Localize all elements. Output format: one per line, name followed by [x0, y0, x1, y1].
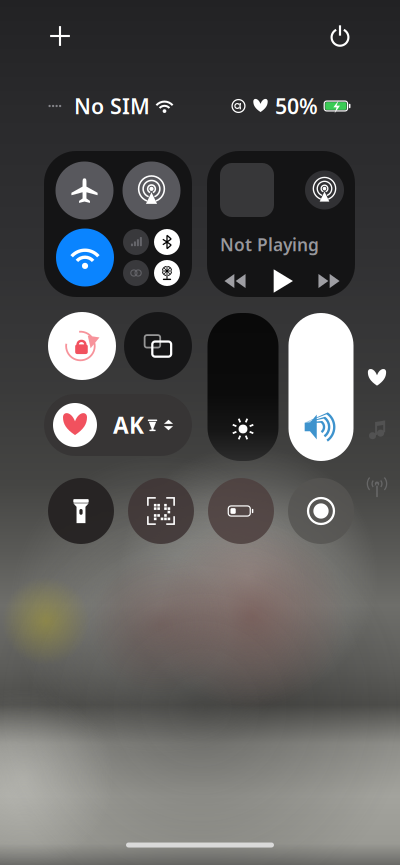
- button[interactable]: Flashlight: [48, 478, 114, 544]
- button[interactable]: Screen Recording: [288, 478, 354, 544]
- button[interactable]: Rotation Lock: [48, 312, 116, 380]
- button[interactable]: Code Scanner: [128, 478, 194, 544]
- button[interactable]: AirPlay: [305, 170, 344, 209]
- button[interactable]: Brightness: [207, 313, 278, 461]
- button[interactable]: Low Power Mode: [208, 478, 274, 544]
- button[interactable]: Focus: [44, 394, 192, 456]
- button[interactable]: Power Off: [317, 13, 363, 59]
- button[interactable]: Satellite: [154, 260, 180, 286]
- button[interactable]: Screen Mirroring: [124, 312, 192, 380]
- staticText: AK: [113, 410, 144, 440]
- button[interactable]: Wi-Fi: [56, 228, 114, 286]
- button[interactable]: Play: [267, 266, 297, 296]
- button[interactable]: Volume: [288, 313, 353, 461]
- button[interactable]: Add a Control: [37, 13, 83, 59]
- staticText: No SIM: [74, 92, 150, 120]
- button[interactable]: Next Track: [314, 266, 344, 296]
- button[interactable]: Previous Track: [220, 266, 250, 296]
- staticText: Not Playing: [220, 233, 319, 256]
- button[interactable]: Airplane Mode: [55, 161, 113, 219]
- button[interactable]: Bluetooth: [154, 229, 180, 255]
- button[interactable]: Personal Hotspot: [123, 260, 149, 286]
- button[interactable]: Connectivity: [362, 472, 392, 502]
- button[interactable]: Now Playing: [362, 415, 392, 445]
- button[interactable]: Cellular Data: [123, 229, 149, 255]
- button[interactable]: AirDrop: [122, 161, 180, 219]
- button[interactable]: Home Controls: [362, 363, 392, 393]
- staticText: 50%: [275, 92, 318, 120]
